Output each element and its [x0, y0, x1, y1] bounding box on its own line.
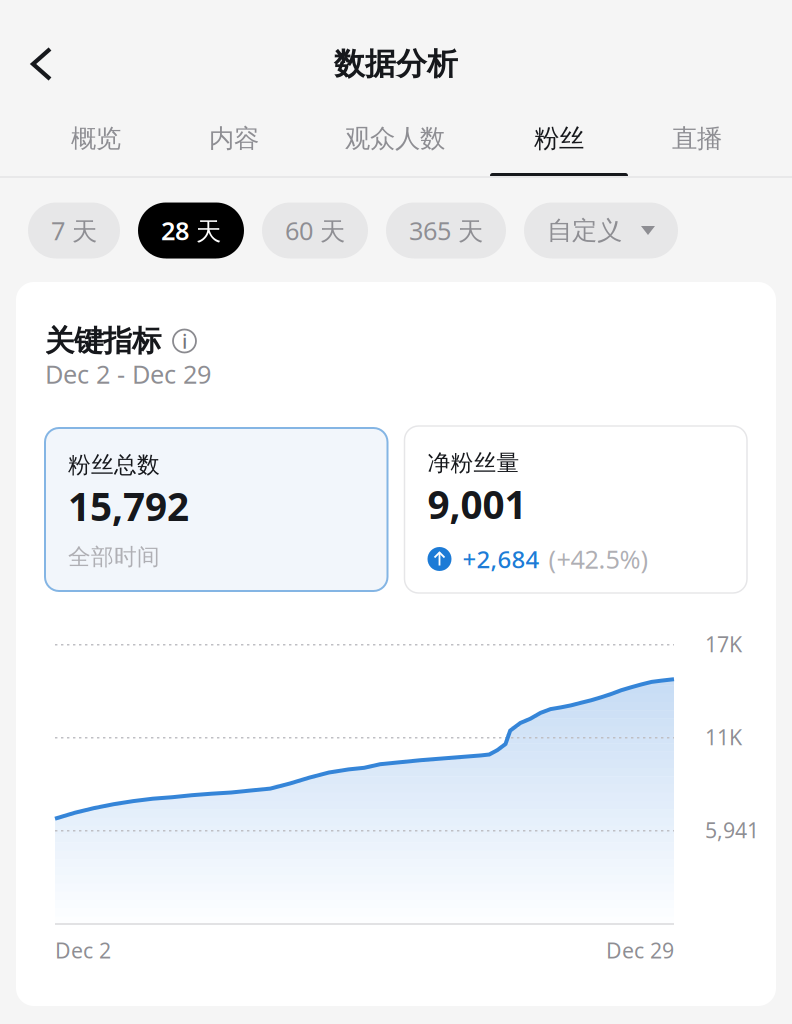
staticText: 自定义	[547, 215, 622, 246]
button[interactable]: 净粉丝量	[404, 426, 747, 593]
staticText: 15,792	[68, 480, 189, 532]
button[interactable]: 粉丝总数	[45, 428, 387, 591]
button[interactable]: 365 天	[386, 202, 506, 258]
button[interactable]: 粉丝	[490, 105, 628, 178]
staticText: 11K	[705, 723, 742, 751]
staticText: 概览	[71, 123, 121, 154]
staticText: 内容	[209, 123, 259, 154]
button[interactable]: 60 天	[262, 202, 368, 258]
staticText: 9,001	[427, 478, 526, 530]
staticText: Dec 2	[55, 936, 111, 964]
staticText: 数据分析	[334, 45, 458, 83]
button[interactable]: 直播	[628, 105, 766, 178]
staticText: Dec 29	[606, 936, 674, 964]
staticText: 7 天	[51, 214, 97, 247]
button[interactable]: Back	[0, 32, 72, 96]
staticText: 365 天	[409, 214, 483, 247]
staticText: 粉丝总数	[68, 451, 160, 479]
button[interactable]: 7 天	[28, 202, 120, 258]
staticText: 全部时间	[68, 543, 160, 571]
staticText: 观众人数	[345, 123, 445, 154]
staticText: 粉丝	[534, 123, 584, 154]
staticText: 60 天	[285, 214, 345, 247]
staticText: 28 天	[161, 214, 221, 247]
staticText: 净粉丝量	[427, 449, 519, 477]
staticText: i	[182, 328, 187, 354]
staticText: (+42.5%)	[548, 542, 648, 576]
staticText: 直播	[672, 123, 722, 154]
button[interactable]: 内容	[165, 105, 303, 178]
button[interactable]: 28 天	[138, 202, 244, 258]
staticText: 17K	[705, 630, 742, 658]
staticText: 关键指标	[45, 323, 161, 359]
button[interactable]: 自定义	[524, 202, 678, 258]
button[interactable]: 观众人数	[326, 105, 464, 178]
staticText: 5,941	[705, 816, 759, 844]
staticText: Dec 2 - Dec 29	[45, 357, 211, 391]
staticText: +2,684	[462, 543, 539, 575]
button[interactable]: 概览	[27, 105, 165, 178]
